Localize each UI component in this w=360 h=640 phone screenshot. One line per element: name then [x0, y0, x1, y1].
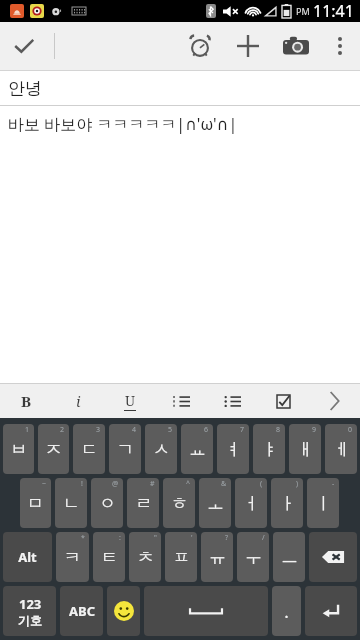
button[interactable]: ㅡ: [273, 532, 305, 582]
staticText: 11:41: [313, 0, 354, 22]
button[interactable]: :: [93, 532, 125, 582]
button[interactable]: i: [52, 384, 104, 418]
button[interactable]: 7: [217, 424, 249, 474]
staticText: ㅣ: [315, 493, 332, 514]
button[interactable]: @: [91, 478, 123, 528]
button[interactable]: 123: [3, 586, 56, 636]
staticText: ㅂ: [10, 439, 27, 460]
staticText: :: [119, 533, 121, 543]
staticText: U: [125, 391, 136, 410]
button[interactable]: 8: [253, 424, 285, 474]
staticText: ㅛ: [189, 439, 206, 460]
staticText: #: [150, 479, 155, 489]
staticText: ^: [186, 479, 191, 489]
staticText: 안녕: [8, 78, 42, 99]
staticText: ㅏ: [279, 493, 296, 514]
button[interactable]: *: [56, 532, 89, 582]
button[interactable]: Add: [224, 22, 272, 70]
staticText: 9: [312, 425, 317, 435]
staticText: i: [76, 391, 81, 411]
button[interactable]: U: [104, 384, 156, 418]
button[interactable]: Numbered list: [156, 384, 207, 418]
button[interactable]: Bulleted list: [207, 384, 258, 418]
button[interactable]: ^: [163, 478, 195, 528]
button[interactable]: ': [165, 532, 197, 582]
staticText: 8: [276, 425, 281, 435]
staticText: ㅍ: [173, 547, 190, 568]
button[interactable]: Backspace: [309, 532, 357, 582]
staticText: ㅓ: [243, 493, 260, 514]
staticText: 바보 바보야 ㅋㅋㅋㅋㅋ|∩'ω'∩|: [8, 113, 238, 135]
staticText: ㄴ: [63, 493, 80, 514]
staticText: &: [221, 479, 227, 489]
staticText: ~: [42, 479, 47, 489]
staticText: ㅅ: [153, 439, 170, 460]
staticText: ㅑ: [261, 439, 278, 460]
staticText: *: [81, 533, 85, 543]
staticText: ㅔ: [333, 439, 350, 460]
button[interactable]: 9: [289, 424, 321, 474]
staticText: ㅠ: [209, 547, 226, 568]
staticText: ㅌ: [101, 547, 118, 568]
button[interactable]: Emoji: [107, 586, 140, 636]
button[interactable]: 1: [3, 424, 34, 474]
button[interactable]: 4: [109, 424, 141, 474]
staticText: 7: [240, 425, 245, 435]
button[interactable]: Checklist: [258, 384, 309, 418]
button[interactable]: /: [237, 532, 269, 582]
button[interactable]: -: [307, 478, 339, 528]
button[interactable]: ABC: [60, 586, 103, 636]
button[interactable]: Enter: [305, 586, 357, 636]
staticText: ㅐ: [297, 439, 314, 460]
button[interactable]: Camera: [272, 22, 320, 70]
staticText: /: [262, 533, 265, 543]
staticText: Alt: [18, 548, 37, 566]
button[interactable]: 5: [145, 424, 177, 474]
button[interactable]: .: [272, 586, 301, 636]
button[interactable]: ): [271, 478, 303, 528]
staticText: ㅈ: [45, 439, 62, 460]
button[interactable]: More options: [320, 26, 360, 66]
staticText: ㅇ: [99, 493, 116, 514]
staticText: 6: [204, 425, 209, 435]
staticText: ': [191, 533, 193, 543]
staticText: ㅕ: [225, 439, 242, 460]
button[interactable]: 0: [325, 424, 357, 474]
button[interactable]: ~: [20, 478, 51, 528]
button[interactable]: ?: [201, 532, 233, 582]
staticText: 2: [60, 425, 65, 435]
staticText: ㄹ: [135, 493, 152, 514]
button[interactable]: Space: [144, 586, 268, 636]
staticText: ㅗ: [207, 493, 224, 514]
button[interactable]: Reminder: [176, 22, 224, 70]
staticText: !: [81, 479, 83, 489]
staticText: ㄷ: [81, 439, 98, 460]
staticText: (: [260, 479, 263, 489]
button[interactable]: &: [199, 478, 231, 528]
button[interactable]: (: [235, 478, 267, 528]
staticText: B: [21, 391, 32, 411]
button[interactable]: B: [0, 384, 52, 418]
button[interactable]: Done: [0, 22, 48, 70]
staticText: .: [284, 600, 289, 623]
staticText: -: [332, 479, 335, 489]
staticText: ): [296, 479, 299, 489]
staticText: ABC: [69, 602, 95, 620]
button[interactable]: #: [127, 478, 159, 528]
button[interactable]: 3: [73, 424, 105, 474]
button[interactable]: ": [129, 532, 161, 582]
staticText: 4: [132, 425, 137, 435]
button[interactable]: Alt: [3, 532, 52, 582]
staticText: 1: [25, 425, 30, 435]
staticText: ㅜ: [245, 547, 262, 568]
staticText: PM: [296, 5, 310, 17]
button[interactable]: More formatting: [309, 384, 360, 418]
staticText: ": [154, 533, 157, 543]
button[interactable]: 6: [181, 424, 213, 474]
staticText: @: [112, 479, 119, 489]
staticText: 3: [96, 425, 101, 435]
button[interactable]: 2: [38, 424, 69, 474]
staticText: ㅡ: [281, 547, 298, 568]
button[interactable]: !: [55, 478, 87, 528]
staticText: 0: [348, 425, 353, 435]
